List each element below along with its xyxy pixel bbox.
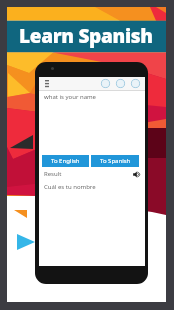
staticText: Learn Spanish: [19, 23, 153, 49]
staticText: Cuál es tu nombre: [44, 183, 96, 191]
staticText: Result: [44, 170, 62, 178]
button[interactable]: To Spanish: [91, 155, 139, 167]
button[interactable]: Microphone: [114, 77, 127, 90]
button[interactable]: Speak: [131, 168, 143, 180]
button[interactable]: To English: [42, 155, 89, 167]
button[interactable]: Share: [129, 77, 142, 90]
staticText: what is your name: [44, 93, 97, 101]
button[interactable]: Menu: [40, 77, 54, 90]
staticText: To Spanish: [100, 157, 131, 165]
button[interactable]: Listen: [99, 77, 112, 90]
staticText: To English: [51, 157, 80, 165]
